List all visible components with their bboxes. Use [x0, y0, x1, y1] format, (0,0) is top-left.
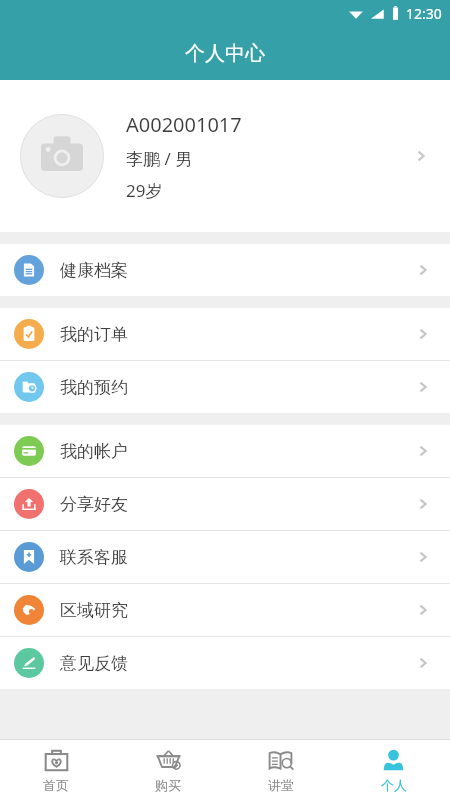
staticText: 李鹏 / 男: [126, 147, 193, 170]
staticText: 健康档案: [60, 260, 128, 281]
staticText: 29岁: [126, 179, 163, 202]
button[interactable]: 我的帐户: [0, 425, 450, 477]
button[interactable]: 区域研究: [0, 584, 450, 636]
staticText: 联系客服: [60, 547, 128, 568]
button[interactable]: 意见反馈: [0, 637, 450, 689]
staticText: 首页: [43, 777, 69, 793]
button[interactable]: 我的预约: [0, 361, 450, 413]
staticText: 我的订单: [60, 324, 128, 345]
button[interactable]: 讲堂: [224, 740, 337, 800]
staticText: 意见反馈: [60, 653, 128, 674]
staticText: 我的帐户: [60, 441, 128, 462]
button[interactable]: 我的订单: [0, 308, 450, 360]
staticText: 12:30: [406, 4, 442, 23]
staticText: 个人中心: [185, 41, 265, 66]
button[interactable]: 联系客服: [0, 531, 450, 583]
staticText: 个人: [381, 777, 407, 793]
staticText: 我的预约: [60, 377, 128, 398]
button[interactable]: 健康档案: [0, 244, 450, 296]
staticText: 购买: [155, 777, 181, 793]
button[interactable]: A002001017: [0, 80, 450, 232]
staticText: 讲堂: [268, 777, 294, 793]
staticText: 分享好友: [60, 494, 128, 515]
staticText: A002001017: [126, 111, 242, 138]
button[interactable]: 购买: [112, 740, 224, 800]
staticText: 区域研究: [60, 600, 128, 621]
button[interactable]: 首页: [0, 740, 112, 800]
button[interactable]: 个人: [337, 740, 450, 800]
button[interactable]: 分享好友: [0, 478, 450, 530]
